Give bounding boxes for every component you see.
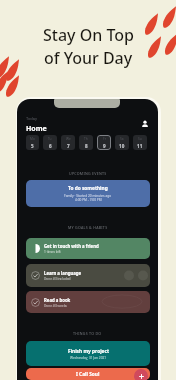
staticText: 11 xyxy=(137,143,143,149)
staticText: Finish my project xyxy=(68,348,109,355)
staticText: MY GOALS & HABITS xyxy=(68,225,108,230)
button[interactable]: Sa xyxy=(115,135,129,150)
staticText: Home xyxy=(26,124,47,134)
staticText: Wednesday, 31 Jan 2021 xyxy=(70,356,107,360)
staticText: Today xyxy=(26,116,38,121)
staticText: Learn a language xyxy=(44,270,82,276)
staticText: Done #3 weeks xyxy=(44,304,67,308)
staticText: Get in touch with a friend xyxy=(44,243,99,249)
staticText: 5 xyxy=(31,143,34,149)
staticText: of Your Day xyxy=(44,47,133,69)
staticText: Done #3 included xyxy=(44,277,71,281)
button[interactable]: Su xyxy=(133,135,147,150)
staticText: I Call Soul xyxy=(76,371,100,378)
button[interactable]: Mo xyxy=(26,135,39,150)
button[interactable]: Th xyxy=(79,135,93,150)
staticText: Sa xyxy=(120,137,124,141)
button[interactable]: Profile xyxy=(139,118,151,130)
button[interactable]: Tu xyxy=(43,135,57,150)
staticText: Tu xyxy=(48,137,52,141)
staticText: Stay On Top xyxy=(43,24,134,46)
staticText: To do something xyxy=(68,185,108,192)
staticText: THINGS TO DO xyxy=(73,331,102,336)
button[interactable]: Get in touch with a friend xyxy=(26,238,150,259)
staticText: Family · Started 20 minutes ago xyxy=(64,194,112,198)
staticText: 4:00 PM - 7:00 PM xyxy=(75,198,102,202)
staticText: Fr xyxy=(103,137,106,141)
button[interactable]: Finish my project xyxy=(26,341,150,366)
button[interactable]: Learn a language xyxy=(26,264,150,287)
staticText: Mo xyxy=(30,137,35,141)
button[interactable]: Read a book xyxy=(26,291,150,313)
staticText: 8 xyxy=(85,143,88,149)
button[interactable]: I Call Soul xyxy=(26,368,150,380)
staticText: 6 xyxy=(49,143,52,149)
button[interactable]: To do something xyxy=(26,180,150,207)
staticText: Th xyxy=(84,137,88,141)
staticText: 1 times left xyxy=(44,250,61,254)
staticText: Read a book xyxy=(44,297,71,303)
staticText: UPCOMING EVENTS xyxy=(69,171,107,176)
button[interactable]: Fr xyxy=(97,135,111,150)
staticText: Su xyxy=(138,137,142,141)
button[interactable]: Add task xyxy=(134,369,148,380)
staticText: 9 xyxy=(103,143,106,149)
staticText: 10 xyxy=(119,143,125,149)
staticText: 7 xyxy=(67,143,70,149)
button[interactable]: We xyxy=(61,135,75,150)
staticText: We xyxy=(66,137,71,141)
